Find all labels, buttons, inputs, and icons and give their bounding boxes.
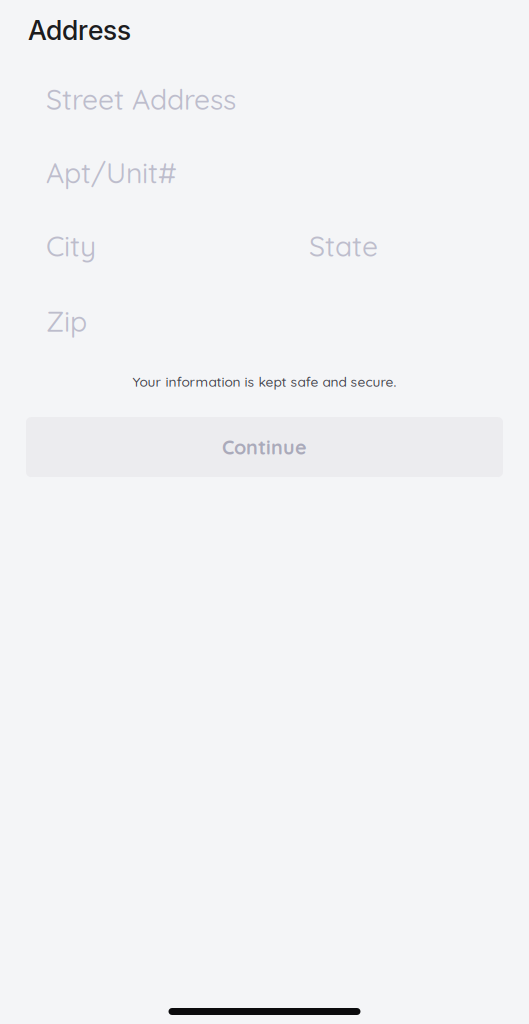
button[interactable]: Apt/Unit# <box>46 155 177 190</box>
button[interactable]: Zip <box>46 304 87 339</box>
button[interactable]: City <box>46 228 96 264</box>
staticText: Street Address <box>46 82 236 117</box>
staticText: Your information is kept safe and secure… <box>132 373 396 390</box>
staticText: Apt/Unit# <box>46 155 177 190</box>
staticText: City <box>46 228 96 264</box>
button[interactable]: Street Address <box>46 82 236 117</box>
staticText: Zip <box>46 304 87 339</box>
staticText: Continue <box>222 435 307 459</box>
staticText: State <box>309 228 378 264</box>
button[interactable]: Continue <box>26 417 503 477</box>
button[interactable]: State <box>309 228 378 264</box>
staticText: Address <box>28 14 131 47</box>
